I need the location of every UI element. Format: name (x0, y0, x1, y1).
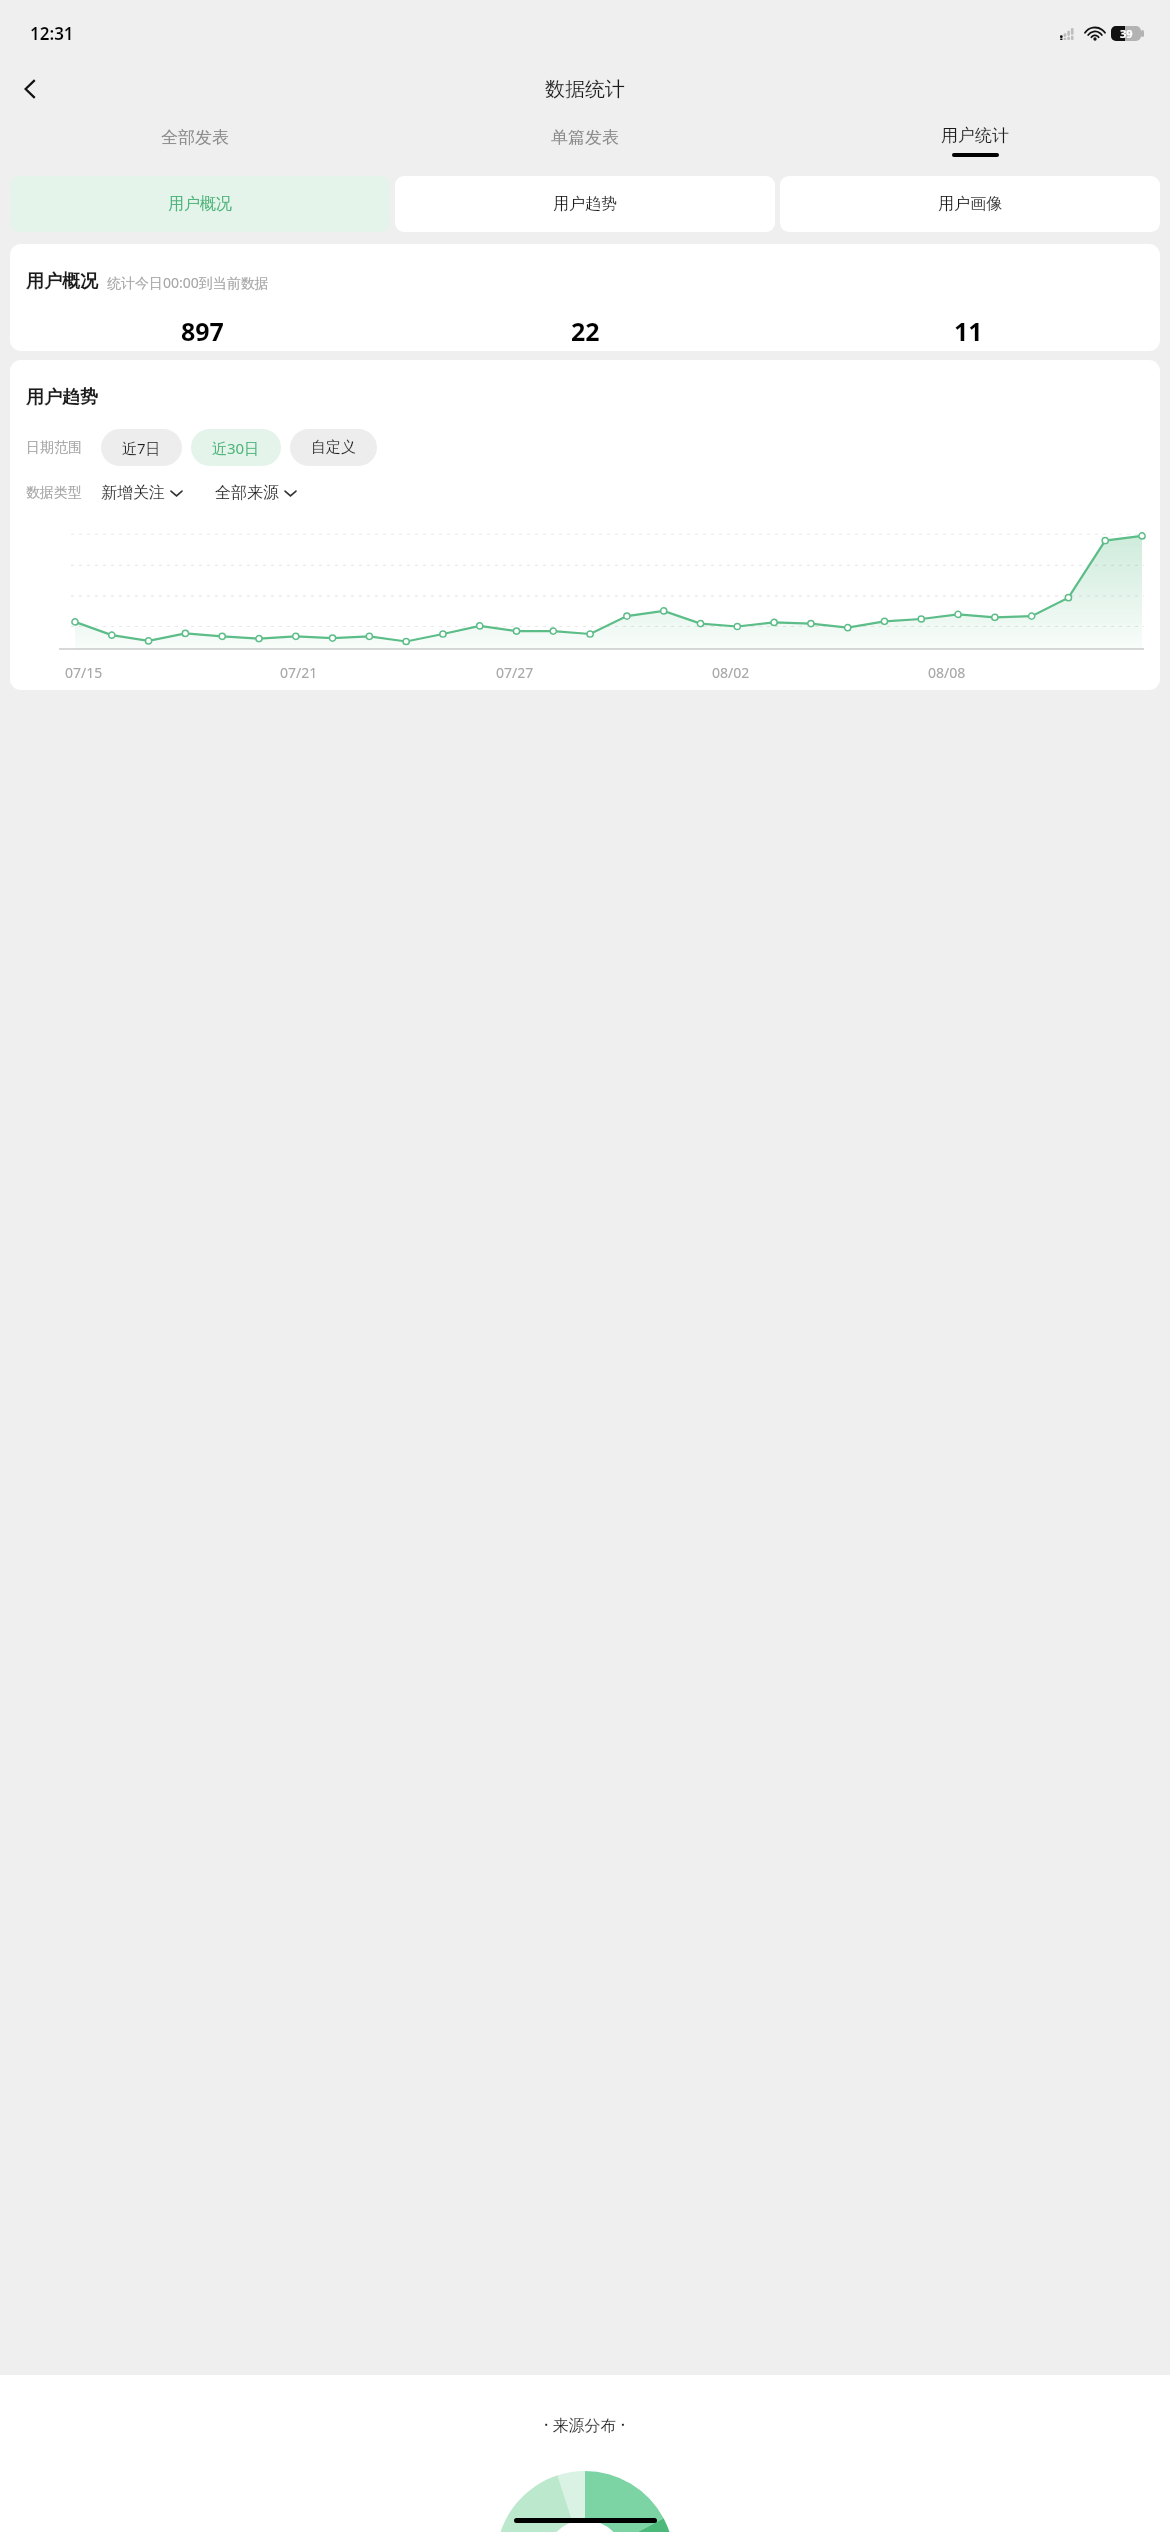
staticText: 22 (571, 314, 600, 348)
staticText: 自定义 (311, 438, 356, 457)
staticText: 统计今日00:00到当前数据 (107, 273, 269, 292)
staticText: 数据统计 (545, 77, 625, 102)
staticText: 单篇发表 (551, 127, 619, 148)
button[interactable]: 新增关注 (101, 479, 182, 507)
staticText: 新增关注 (101, 483, 165, 503)
staticText: 07/21 (280, 663, 318, 682)
staticText: 39 (1120, 26, 1133, 41)
staticText: 用户趋势 (26, 386, 98, 409)
button[interactable]: 全部来源 (215, 479, 296, 507)
staticText: 日期范围 (26, 439, 82, 457)
staticText: 数据类型 (26, 484, 82, 502)
button[interactable]: 单篇发表 (390, 116, 780, 166)
button[interactable]: 全部发表 (0, 116, 390, 166)
staticText: 全部来源 (215, 483, 279, 503)
staticText: 12:31 (30, 22, 74, 45)
staticText: 11 (954, 314, 983, 348)
staticText: · 来源分布 · (544, 2414, 626, 2436)
button[interactable]: 用户概况 (10, 176, 390, 232)
staticText: 近30日 (212, 438, 260, 458)
button[interactable]: 近7日 (101, 429, 182, 466)
staticText: 07/15 (65, 663, 103, 682)
button[interactable]: Back (6, 65, 54, 113)
button[interactable]: 近30日 (191, 429, 281, 466)
button[interactable]: 用户趋势 (395, 176, 775, 232)
staticText: 全部发表 (161, 127, 229, 148)
staticText: 897 (181, 314, 224, 348)
staticText: 08/08 (928, 663, 966, 682)
button[interactable]: 用户统计 (780, 116, 1170, 166)
button[interactable]: 自定义 (290, 429, 377, 466)
staticText: 用户统计 (941, 125, 1009, 146)
staticText: 07/27 (496, 663, 534, 682)
staticText: 近7日 (122, 438, 161, 458)
staticText: 08/02 (712, 663, 750, 682)
button[interactable]: 用户画像 (780, 176, 1160, 232)
staticText: 用户趋势 (553, 194, 617, 214)
staticText: 用户画像 (938, 194, 1002, 214)
staticText: 用户概况 (168, 194, 232, 214)
staticText: 用户概况 (26, 270, 98, 293)
